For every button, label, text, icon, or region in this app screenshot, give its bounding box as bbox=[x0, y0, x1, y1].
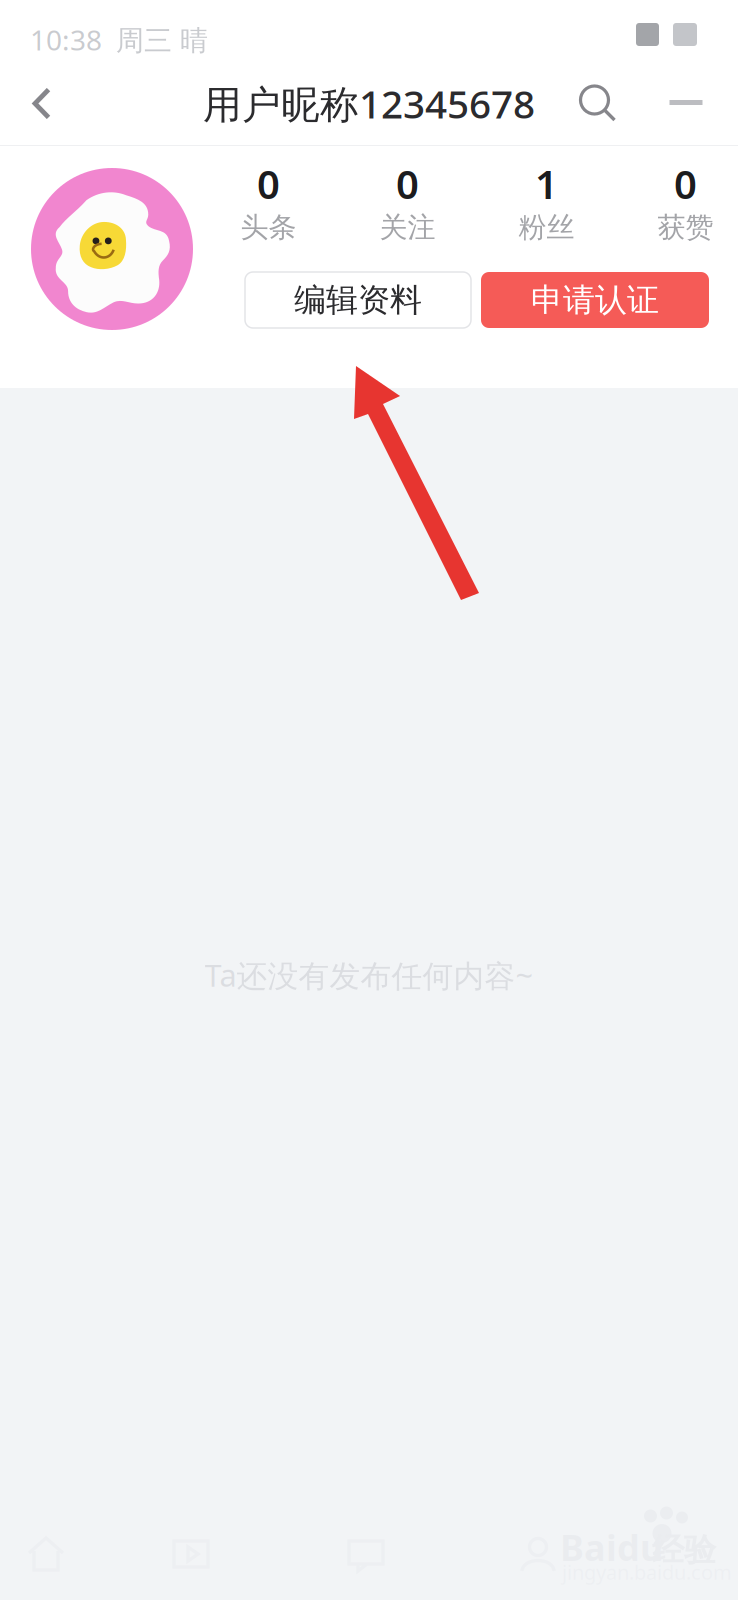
staticText: 1 bbox=[535, 157, 558, 210]
button[interactable]: 0 bbox=[338, 157, 477, 244]
staticText: 10:38 周三 晴 bbox=[30, 21, 208, 58]
button[interactable]: 编辑资料 bbox=[245, 272, 471, 328]
button[interactable]: 更多 bbox=[655, 62, 717, 145]
button[interactable]: 返回 bbox=[8, 62, 76, 145]
button[interactable]: 0 bbox=[199, 157, 338, 244]
staticText: 经验 bbox=[652, 1530, 716, 1570]
staticText: Baidu bbox=[560, 1523, 663, 1571]
staticText: 用户昵称12345678 bbox=[203, 78, 535, 129]
staticText: 编辑资料 bbox=[294, 280, 422, 320]
button[interactable]: 0 bbox=[616, 157, 738, 244]
staticText: 头条 bbox=[240, 210, 296, 244]
button[interactable]: 1 bbox=[477, 157, 616, 244]
button[interactable]: 头像 bbox=[31, 168, 193, 330]
staticText: 获赞 bbox=[657, 210, 713, 244]
button[interactable]: 申请认证 bbox=[481, 272, 709, 328]
staticText: 申请认证 bbox=[531, 280, 659, 320]
staticText: 0 bbox=[396, 157, 419, 210]
staticText: 0 bbox=[674, 157, 697, 210]
staticText: Ta还没有发布任何内容~ bbox=[204, 955, 533, 995]
button[interactable]: 搜索 bbox=[566, 62, 630, 145]
staticText: 0 bbox=[257, 157, 280, 210]
staticText: 关注 bbox=[379, 210, 435, 244]
staticText: 粉丝 bbox=[518, 210, 574, 244]
